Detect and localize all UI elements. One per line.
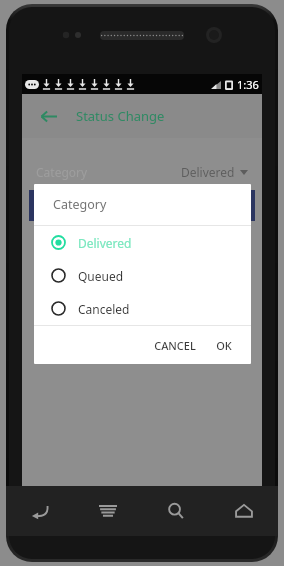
button[interactable]: Back bbox=[34, 102, 62, 130]
staticText: Delivered bbox=[78, 235, 132, 251]
staticText: Canceled bbox=[78, 301, 130, 317]
button[interactable]: Delivered bbox=[34, 226, 251, 259]
button[interactable]: Menu bbox=[85, 488, 131, 534]
button[interactable]: Category bbox=[36, 160, 248, 184]
staticText: Category bbox=[53, 196, 107, 213]
button[interactable]: CANCEL bbox=[146, 332, 204, 359]
staticText: Queued bbox=[78, 268, 124, 284]
button[interactable]: Home bbox=[221, 488, 267, 534]
button[interactable]: Search bbox=[153, 488, 199, 534]
button[interactable]: Canceled bbox=[34, 292, 251, 325]
staticText: Category bbox=[36, 164, 88, 180]
staticText: Delivered bbox=[181, 164, 235, 180]
button[interactable]: Back bbox=[17, 488, 63, 534]
staticText: OK bbox=[216, 338, 232, 353]
staticText: Status Change bbox=[76, 107, 165, 125]
staticText: 1:36 bbox=[237, 77, 259, 92]
button[interactable]: OK bbox=[208, 332, 240, 359]
staticText: CANCEL bbox=[154, 338, 196, 353]
button[interactable]: Queued bbox=[34, 259, 251, 292]
